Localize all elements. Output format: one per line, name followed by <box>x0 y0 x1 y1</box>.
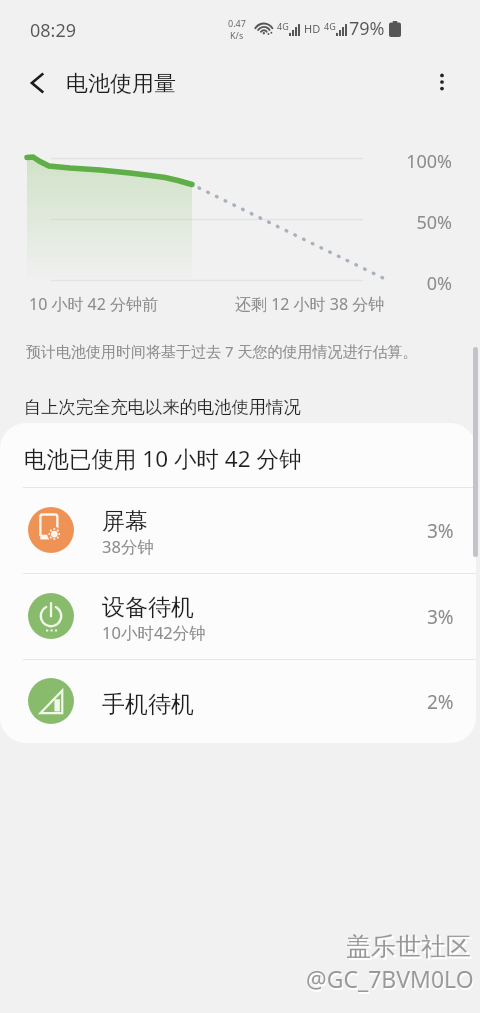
staticText: 10小时42分钟 <box>102 621 206 644</box>
staticText: 79% <box>349 16 385 41</box>
staticText: 100% <box>332 149 452 174</box>
staticText: 手机待机 <box>102 690 194 719</box>
staticText: 2% <box>427 689 454 715</box>
button[interactable]: 设备待机 <box>0 574 476 660</box>
button[interactable]: 屏幕 <box>0 488 476 574</box>
button[interactable]: Back <box>13 59 61 107</box>
staticText: 0.47 <box>228 17 246 29</box>
staticText: K/s <box>230 29 244 41</box>
staticText: 08:29 <box>30 18 77 43</box>
staticText: 自上次完全充电以来的电池使用情况 <box>24 396 301 418</box>
staticText: 盖乐世社区 <box>348 933 473 964</box>
staticText: 设备待机 <box>102 593 194 622</box>
button[interactable]: 手机待机 <box>0 660 476 743</box>
staticText: 屏幕 <box>102 507 148 536</box>
staticText: 38分钟 <box>102 535 154 558</box>
staticText: 10 小时 42 分钟前 <box>29 293 159 315</box>
staticText: 盖乐世社区 <box>346 931 471 962</box>
staticText: 4G <box>324 20 336 32</box>
staticText: 3% <box>427 518 454 544</box>
staticText: 电池已使用 10 小时 42 分钟 <box>24 443 302 474</box>
staticText: 4G <box>277 20 289 32</box>
staticText: 0% <box>332 271 452 296</box>
staticText: 50% <box>332 210 452 235</box>
staticText: 还剩 12 小时 38 分钟 <box>235 293 385 315</box>
button[interactable]: More options <box>418 58 466 106</box>
staticText: 电池使用量 <box>66 70 176 98</box>
staticText: @GC_7BVM0LO <box>306 963 474 994</box>
staticText: @GC_7BVM0LO <box>307 965 475 996</box>
staticText: 预计电池使用时间将基于过去 7 天您的使用情况进行估算。 <box>26 341 418 361</box>
staticText: 3% <box>427 604 454 630</box>
staticText: HD <box>304 21 321 36</box>
